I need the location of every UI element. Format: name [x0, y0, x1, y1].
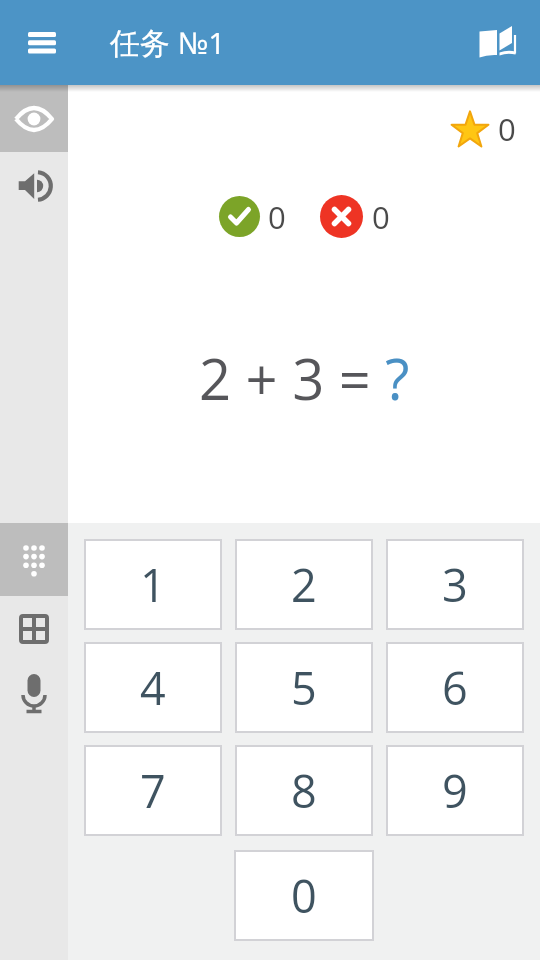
button[interactable] [0, 523, 68, 596]
button[interactable]: 6 [386, 642, 524, 733]
staticText: 任务 №1 [110, 22, 226, 63]
staticText: 8 [291, 760, 317, 821]
button[interactable]: 4 [84, 642, 222, 733]
button[interactable] [0, 85, 68, 152]
staticText: 0 [268, 196, 286, 238]
button[interactable]: 1 [84, 539, 222, 630]
button[interactable]: 9 [386, 745, 524, 836]
staticText: 5 [291, 657, 317, 718]
button[interactable] [0, 166, 68, 206]
staticText: 2 + 3 = ? [199, 340, 410, 416]
staticText: 4 [140, 657, 166, 718]
button[interactable] [0, 604, 68, 654]
staticText: 3 [442, 554, 468, 615]
staticText: 2 [291, 554, 317, 615]
button[interactable]: 5 [235, 642, 373, 733]
staticText: 0 [291, 865, 317, 926]
button[interactable]: 8 [235, 745, 373, 836]
staticText: 7 [140, 760, 166, 821]
staticText: 6 [442, 657, 468, 718]
button[interactable]: 3 [386, 539, 524, 630]
staticText: 0 [498, 108, 516, 150]
button[interactable]: 2 [235, 539, 373, 630]
button[interactable]: 0 [234, 850, 374, 941]
staticText: 1 [140, 554, 166, 615]
staticText: 0 [372, 196, 390, 238]
button[interactable] [468, 13, 528, 73]
button[interactable] [0, 668, 68, 720]
button[interactable] [14, 15, 70, 71]
staticText: 9 [442, 760, 468, 821]
button[interactable]: 7 [84, 745, 222, 836]
